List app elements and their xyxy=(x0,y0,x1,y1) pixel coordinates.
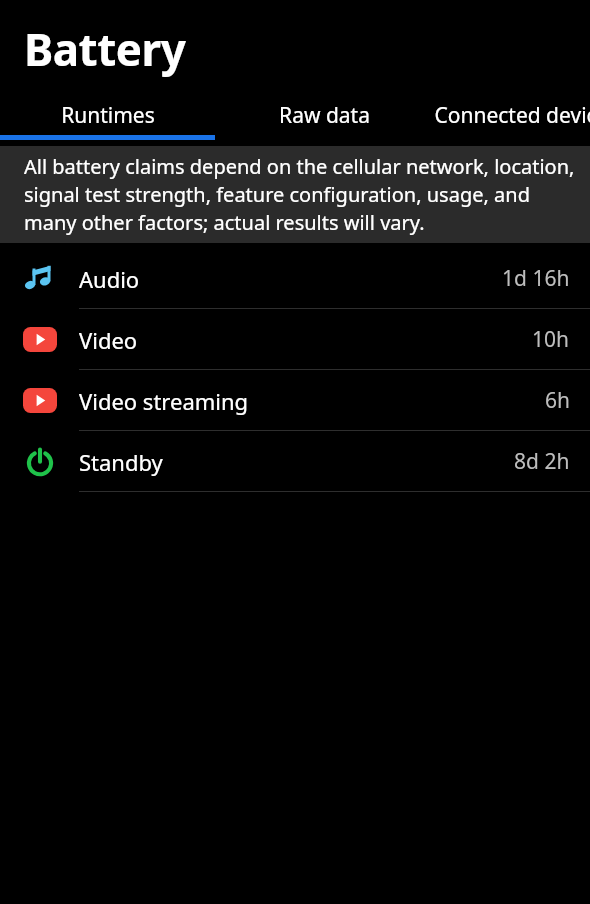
staticText: Battery xyxy=(24,19,186,79)
staticText: All battery claims depend on the cellula… xyxy=(24,153,580,236)
staticText: Standby xyxy=(79,447,163,477)
staticText: Runtimes xyxy=(61,101,155,130)
button[interactable]: Video xyxy=(0,370,590,431)
staticText: Audio xyxy=(79,264,140,294)
staticText: Video streaming xyxy=(79,386,249,416)
staticText: 8d 2h xyxy=(514,447,570,476)
button[interactable]: Video xyxy=(0,309,590,370)
staticText: Video xyxy=(79,325,138,355)
other: Video xyxy=(23,388,57,413)
other: Standby xyxy=(25,447,55,477)
button[interactable]: Standby xyxy=(0,431,590,492)
other: Audio xyxy=(25,264,55,294)
staticText: Connected devices xyxy=(434,101,590,130)
button[interactable]: Raw data xyxy=(215,92,434,146)
button[interactable]: Runtimes xyxy=(0,92,215,146)
button[interactable]: Audio xyxy=(0,248,590,309)
button[interactable]: Connected devices xyxy=(434,92,590,146)
other: Video xyxy=(23,327,57,352)
staticText: 10h xyxy=(532,325,570,354)
staticText: 6h xyxy=(545,386,570,415)
staticText: Raw data xyxy=(279,101,370,130)
staticText: 1d 16h xyxy=(502,264,570,293)
